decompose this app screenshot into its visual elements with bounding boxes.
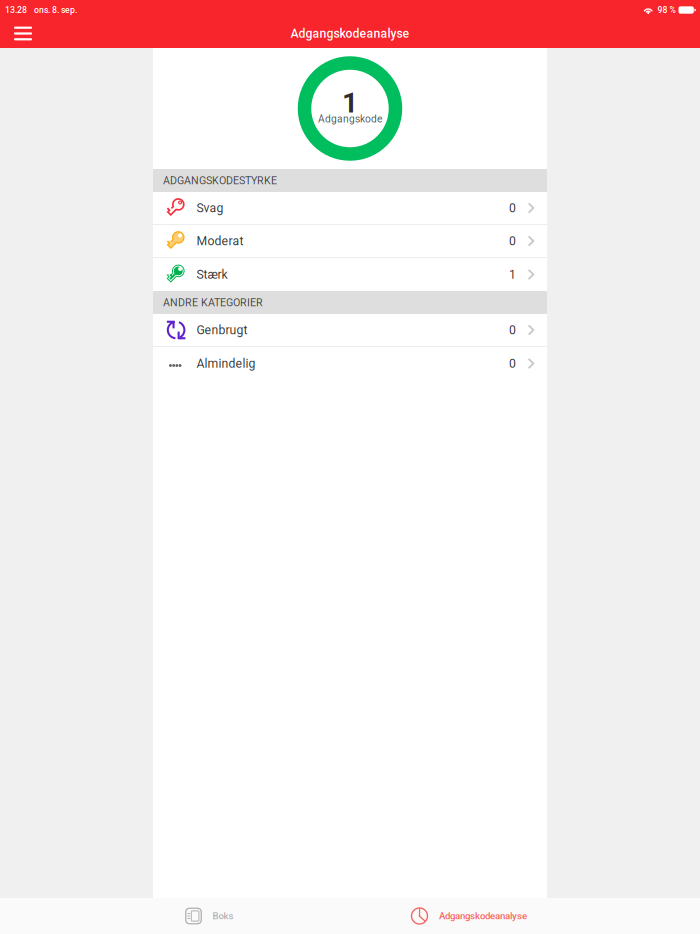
button[interactable]: Adgangskodeanalyse xyxy=(350,898,700,934)
staticText: 0 xyxy=(509,356,516,371)
staticText: 0 xyxy=(509,323,516,337)
staticText: Boks xyxy=(212,910,233,922)
staticText: Genbrugt xyxy=(196,323,247,337)
staticText: 1 xyxy=(342,87,358,119)
staticText: ons. 8. sep. xyxy=(34,5,77,15)
staticText: 1 xyxy=(509,267,516,282)
button[interactable]: Svag xyxy=(153,192,547,225)
staticText: Stærk xyxy=(196,267,227,282)
staticText: Adgangskodeanalyse xyxy=(290,26,409,41)
staticText: 13.28 xyxy=(5,5,27,15)
button[interactable]: Stærk xyxy=(153,258,547,291)
button[interactable]: Moderat xyxy=(153,225,547,258)
staticText: ANDRE KATEGORIER xyxy=(163,296,263,309)
staticText: 0 xyxy=(509,234,516,248)
staticText: 0 xyxy=(509,201,516,215)
button[interactable]: Boks xyxy=(0,898,350,934)
button[interactable]: Almindelig xyxy=(153,347,547,380)
staticText: Almindelig xyxy=(196,356,255,371)
staticText: Adgangskode xyxy=(318,113,382,125)
staticText: ADGANGSKODESTYRKE xyxy=(163,174,277,187)
staticText: 98 % xyxy=(657,5,675,15)
staticText: Adgangskodeanalyse xyxy=(439,910,527,922)
button[interactable]: Menu xyxy=(0,19,46,47)
button[interactable]: Genbrugt xyxy=(153,314,547,347)
staticText: Moderat xyxy=(196,234,243,248)
staticText: Svag xyxy=(196,201,223,215)
